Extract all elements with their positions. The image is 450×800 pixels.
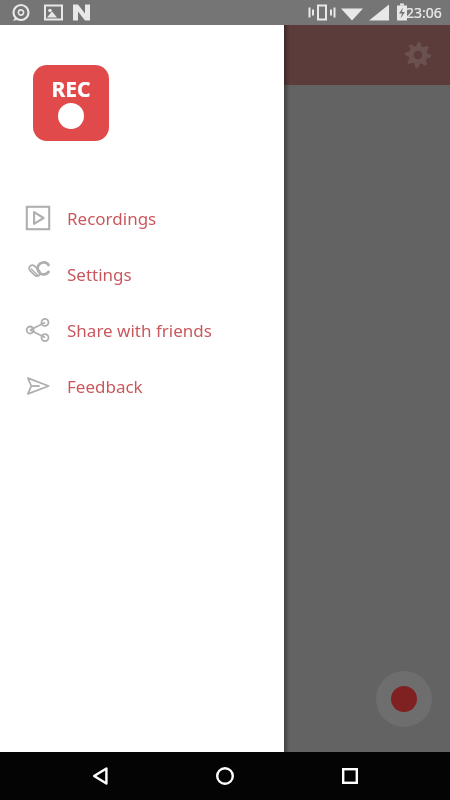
staticText: Feedback [67, 375, 143, 398]
staticText: Recordings [67, 207, 157, 230]
button[interactable]: Recents [326, 752, 374, 800]
button[interactable]: Home [201, 752, 249, 800]
staticText: REC [51, 75, 91, 104]
button[interactable]: Back [77, 752, 125, 800]
button[interactable]: Recordings [0, 190, 284, 246]
button[interactable]: Record [376, 671, 432, 727]
staticText: Share with friends [67, 319, 212, 342]
staticText: 23:06 [406, 3, 442, 22]
staticText: Settings [67, 263, 132, 286]
button[interactable]: Settings [394, 31, 442, 79]
button[interactable]: Feedback [0, 358, 284, 414]
button[interactable]: Share with friends [0, 302, 284, 358]
button[interactable]: Settings [0, 246, 284, 302]
